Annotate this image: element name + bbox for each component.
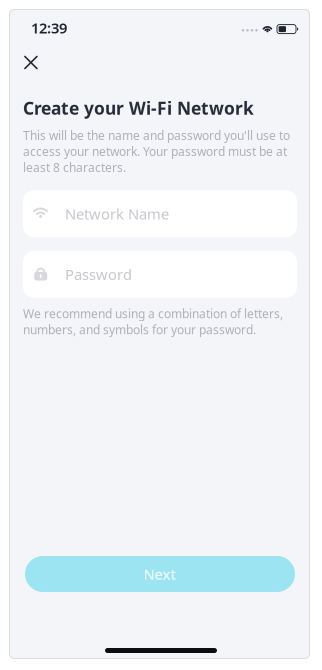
button[interactable]: Password [23,251,297,298]
button[interactable]: Close [12,44,50,79]
staticText: This will be the name and password you'l… [23,127,290,175]
staticText: We recommend using a combination of lett… [23,306,283,338]
staticText: Next [143,564,176,584]
staticText: Password [65,264,132,284]
staticText: 12:39 [31,18,67,37]
staticText: Network Name [65,204,169,223]
button[interactable]: Next [25,556,295,592]
staticText: Create your Wi-Fi Network [23,96,254,119]
button[interactable]: Network Name [23,190,297,237]
